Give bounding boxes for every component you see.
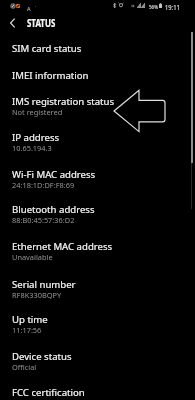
button[interactable]: Wi-Fi MAC address <box>0 168 195 203</box>
button[interactable]: IMEI information <box>0 69 195 96</box>
staticText: 88:B0:45:57:36:D2 <box>12 215 75 225</box>
staticText: IMEI information <box>12 69 89 82</box>
staticText: Up time <box>12 313 48 326</box>
button[interactable]: IP address <box>0 131 195 168</box>
staticText: Not registered <box>12 107 63 117</box>
button[interactable]: Bluetooth address <box>0 203 195 240</box>
button[interactable]: SIM card status <box>0 42 195 69</box>
staticText: Bluetooth address <box>12 203 95 216</box>
staticText: Wi-Fi MAC address <box>12 168 96 181</box>
staticText: A <box>27 5 31 13</box>
button[interactable]: Serial number <box>0 278 195 313</box>
button[interactable]: Device status <box>0 350 195 387</box>
staticText: IP address <box>12 131 60 144</box>
staticText: Ethernet MAC address <box>12 240 113 253</box>
button[interactable]: Ethernet MAC address <box>0 240 195 278</box>
staticText: Official <box>12 362 37 372</box>
button[interactable]: IMS registration status <box>0 95 195 131</box>
staticText: 10.65.194.3 <box>12 143 52 153</box>
staticText: IMS registration status <box>12 95 115 108</box>
button[interactable]: Navigate up <box>1 12 23 34</box>
staticText: Unavailable <box>12 252 53 262</box>
staticText: Device status <box>12 350 72 363</box>
staticText: STATUS <box>27 16 55 30</box>
button[interactable]: FCC certification <box>0 386 195 400</box>
staticText: RF8K330BQPY <box>12 290 62 300</box>
button[interactable]: Up time <box>0 313 195 350</box>
staticText: 19:11 <box>165 3 180 11</box>
staticText: Serial number <box>12 278 76 291</box>
staticText: SIM card status <box>12 42 82 55</box>
staticText: 56% <box>149 3 158 11</box>
staticText: 24:18:1D:DF:F8:69 <box>12 180 75 190</box>
staticText: FCC certification <box>12 386 85 399</box>
staticText: 11:17:56 <box>12 325 42 335</box>
